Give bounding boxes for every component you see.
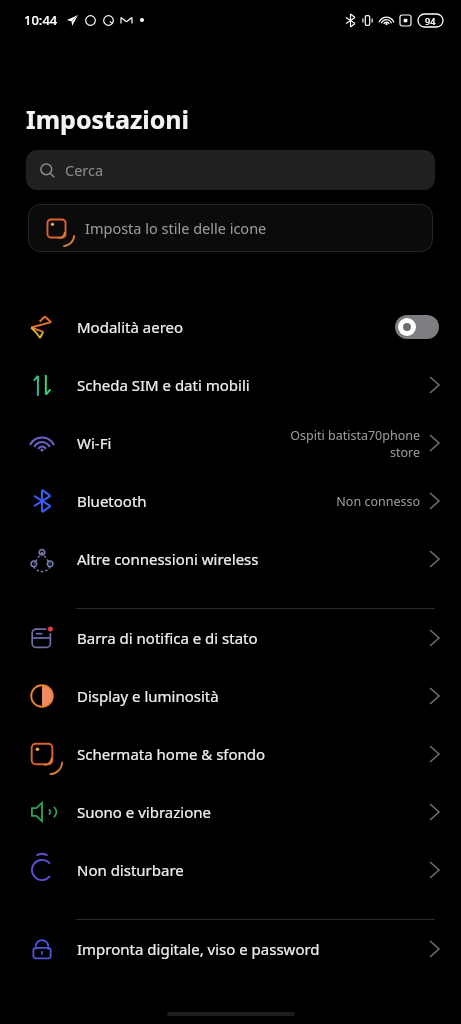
staticText: Modalità aereo <box>77 317 184 337</box>
staticText: Schermata home & sfondo <box>77 744 266 764</box>
staticText: 94 <box>425 15 436 27</box>
button[interactable]: Barra di notifica e di stato <box>0 609 461 667</box>
staticText: Display e luminosità <box>77 686 219 706</box>
button[interactable]: Impronta digitale, viso e password <box>0 920 461 978</box>
staticText: Non disturbare <box>77 860 184 880</box>
button[interactable]: Altre connessioni wireless <box>0 530 461 588</box>
button[interactable]: Non disturbare <box>0 841 461 899</box>
staticText: Ospiti batista70phone store <box>290 427 420 460</box>
button[interactable]: Imposta lo stile delle icone <box>28 204 433 252</box>
staticText: Scheda SIM e dati mobili <box>77 375 250 395</box>
staticText: Non connesso <box>336 493 420 510</box>
staticText: Cerca <box>65 160 104 180</box>
button[interactable]: Schermata home & sfondo <box>0 725 461 783</box>
staticText: 10:44 <box>24 11 58 29</box>
staticText: Altre connessioni wireless <box>77 549 259 569</box>
button[interactable]: Scheda SIM e dati mobili <box>0 356 461 414</box>
staticText: Wi-Fi <box>77 433 112 453</box>
button[interactable]: Modalità aereo <box>0 298 461 356</box>
staticText: Barra di notifica e di stato <box>77 628 258 648</box>
button[interactable]: Display e luminosità <box>0 667 461 725</box>
staticText: Imposta lo stile delle icone <box>85 218 267 238</box>
button[interactable]: Bluetooth <box>0 472 461 530</box>
button[interactable]: Wi-Fi <box>0 414 461 472</box>
button[interactable]: Modalità aereo <box>395 315 439 339</box>
staticText: Impostazioni <box>26 102 190 136</box>
staticText: Bluetooth <box>77 491 147 511</box>
staticText: Impronta digitale, viso e password <box>77 939 320 959</box>
button[interactable]: Suono e vibrazione <box>0 783 461 841</box>
staticText: Suono e vibrazione <box>77 802 211 822</box>
button[interactable]: Cerca <box>26 150 435 190</box>
